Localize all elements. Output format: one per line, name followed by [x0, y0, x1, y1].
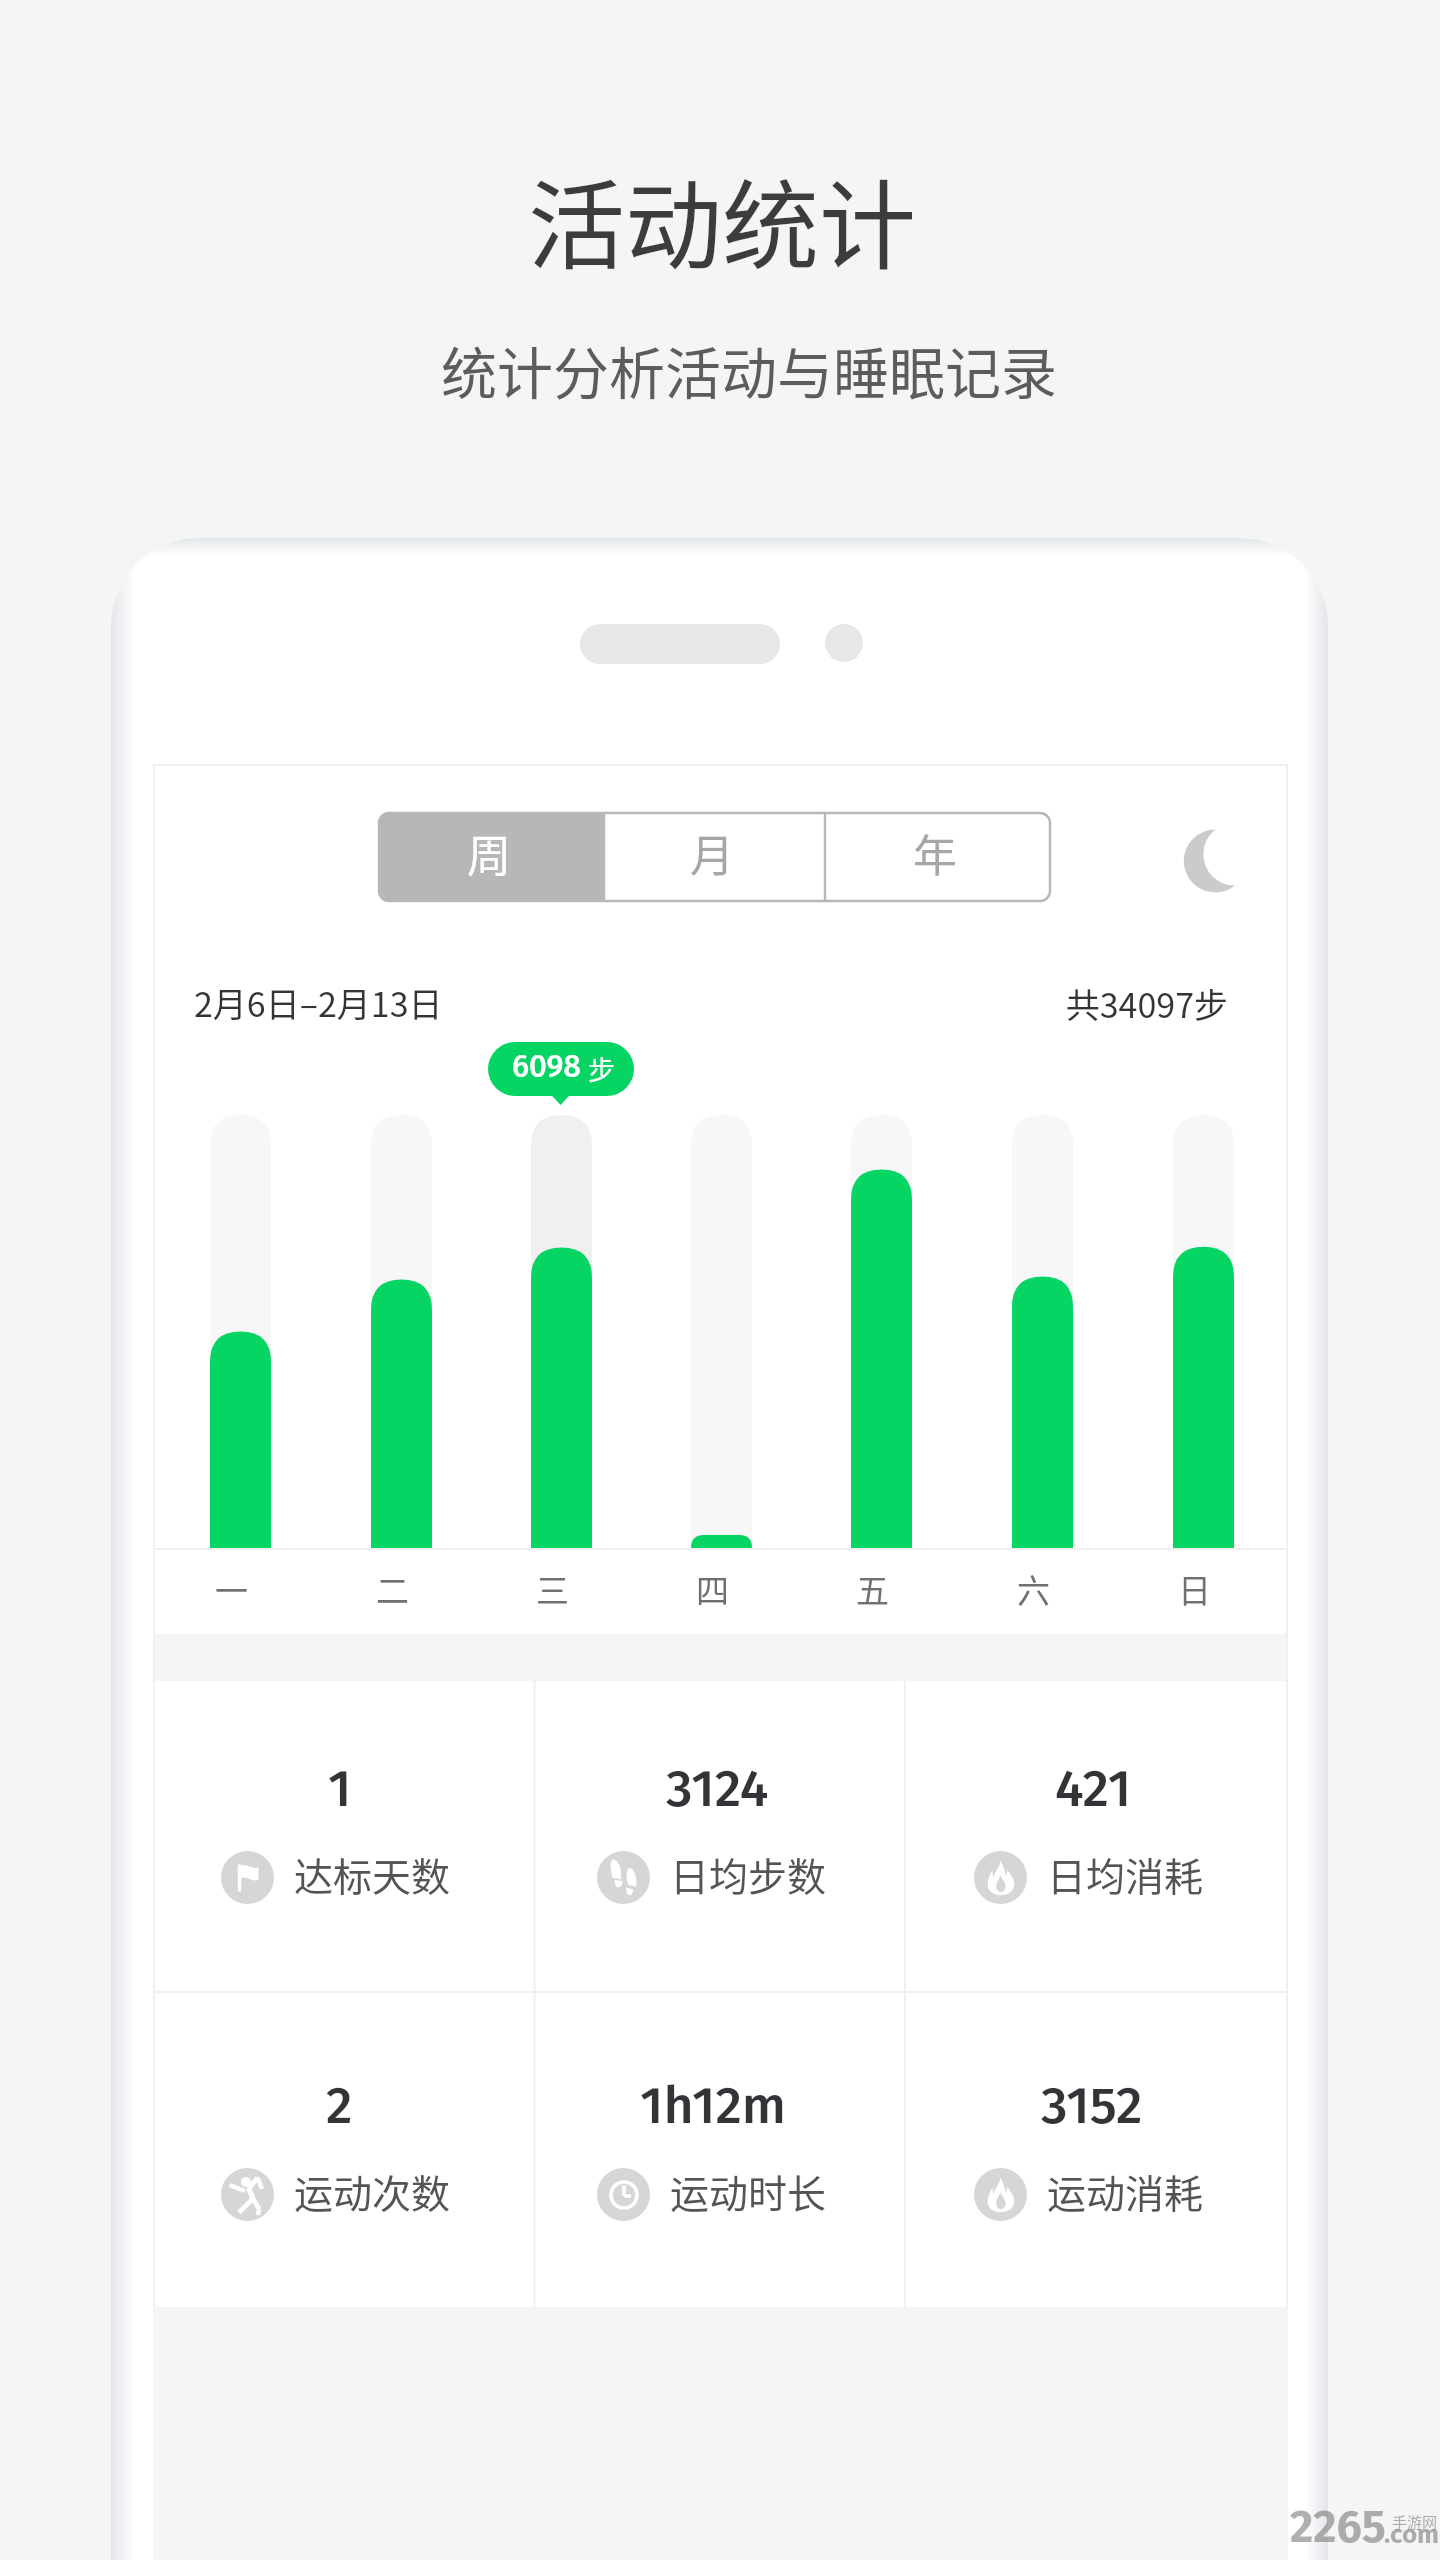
- button[interactable]: 六: [962, 1115, 1123, 1632]
- staticText: 421: [1055, 1757, 1132, 1819]
- button[interactable]: 五: [801, 1115, 962, 1632]
- button[interactable]: 二: [321, 1115, 482, 1632]
- staticText: 手游网: [1392, 2511, 1438, 2533]
- staticText: 2: [326, 2074, 353, 2136]
- button[interactable]: Sleep statistics: [1146, 800, 1266, 920]
- button[interactable]: 421: [905, 1681, 1288, 1992]
- staticText: 日均消耗: [1047, 1846, 1204, 1902]
- button[interactable]: 三: [481, 1115, 642, 1632]
- staticText: 月: [690, 821, 734, 885]
- staticText: 3152: [1041, 2074, 1143, 2136]
- staticText: 步: [588, 1049, 615, 1088]
- staticText: 一: [215, 1565, 248, 1613]
- staticText: 3124: [666, 1757, 769, 1819]
- staticText: 2265: [1290, 2500, 1386, 2554]
- staticText: 运动次数: [294, 2163, 451, 2219]
- staticText: 2月6日–2月13日: [194, 978, 443, 1027]
- button[interactable]: 1h12m: [535, 1992, 905, 2307]
- staticText: 达标天数: [294, 1846, 451, 1902]
- staticText: 三: [536, 1565, 569, 1613]
- button[interactable]: 四: [641, 1115, 802, 1632]
- staticText: 四: [696, 1565, 729, 1613]
- button[interactable]: 1: [153, 1681, 535, 1992]
- staticText: 6098: [512, 1048, 581, 1085]
- staticText: 运动消耗: [1047, 2163, 1204, 2219]
- staticText: 1: [328, 1757, 352, 1819]
- staticText: 年: [913, 821, 957, 885]
- button[interactable]: 年: [825, 813, 1050, 901]
- button[interactable]: 3124: [535, 1681, 905, 1992]
- staticText: 五: [856, 1565, 889, 1613]
- staticText: 共34097步: [908, 979, 1228, 1028]
- staticText: 活动统计: [528, 148, 916, 288]
- button[interactable]: 2: [153, 1992, 535, 2307]
- staticText: 运动时长: [670, 2163, 827, 2219]
- staticText: .com: [1384, 2519, 1440, 2550]
- button[interactable]: 日: [1123, 1115, 1284, 1632]
- staticText: 二: [376, 1565, 409, 1613]
- button[interactable]: 一: [160, 1115, 321, 1632]
- button[interactable]: 月: [604, 813, 825, 901]
- staticText: 六: [1017, 1565, 1050, 1613]
- button[interactable]: 周: [379, 813, 604, 901]
- staticText: 周: [467, 821, 511, 885]
- staticText: 1h12m: [640, 2074, 787, 2136]
- button[interactable]: 3152: [905, 1992, 1288, 2307]
- staticText: 统计分析活动与睡眠记录: [441, 329, 1057, 410]
- staticText: 日均步数: [670, 1846, 827, 1902]
- staticText: 日: [1178, 1565, 1211, 1613]
